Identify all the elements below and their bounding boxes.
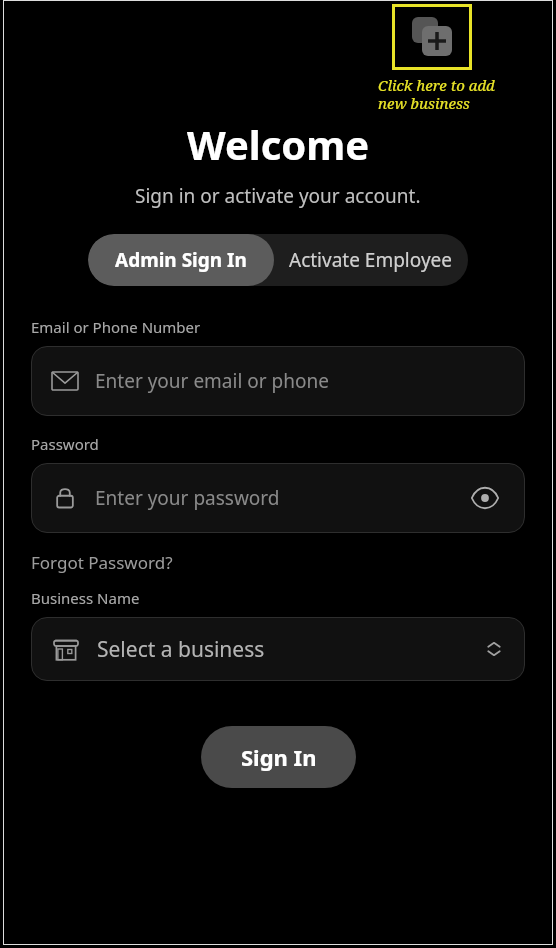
staticText: Activate Employee (289, 247, 453, 273)
button[interactable]: Select a business (31, 617, 525, 681)
button[interactable]: Add new business (392, 4, 472, 70)
button[interactable]: Admin Sign In (88, 234, 274, 286)
button[interactable]: Enter your password (31, 463, 525, 533)
staticText: Enter your password (95, 485, 280, 511)
button[interactable]: Sign In (201, 726, 356, 788)
staticText: Forgot Password? (31, 551, 173, 574)
staticText: Sign In (241, 742, 317, 772)
button[interactable]: Enter your email or phone (31, 346, 525, 416)
staticText: Sign in or activate your account. (135, 183, 421, 209)
staticText: Password (31, 434, 99, 454)
staticText: Enter your email or phone (95, 368, 329, 394)
button[interactable]: Activate Employee (274, 234, 468, 286)
staticText: Click here to add new business (378, 75, 518, 114)
staticText: Select a business (97, 635, 265, 664)
button[interactable]: Forgot Password? (31, 551, 173, 574)
staticText: Email or Phone Number (31, 317, 201, 337)
staticText: Welcome (187, 117, 370, 171)
staticText: Business Name (31, 588, 140, 608)
button[interactable]: Show password (465, 478, 505, 518)
staticText: Admin Sign In (115, 247, 247, 273)
